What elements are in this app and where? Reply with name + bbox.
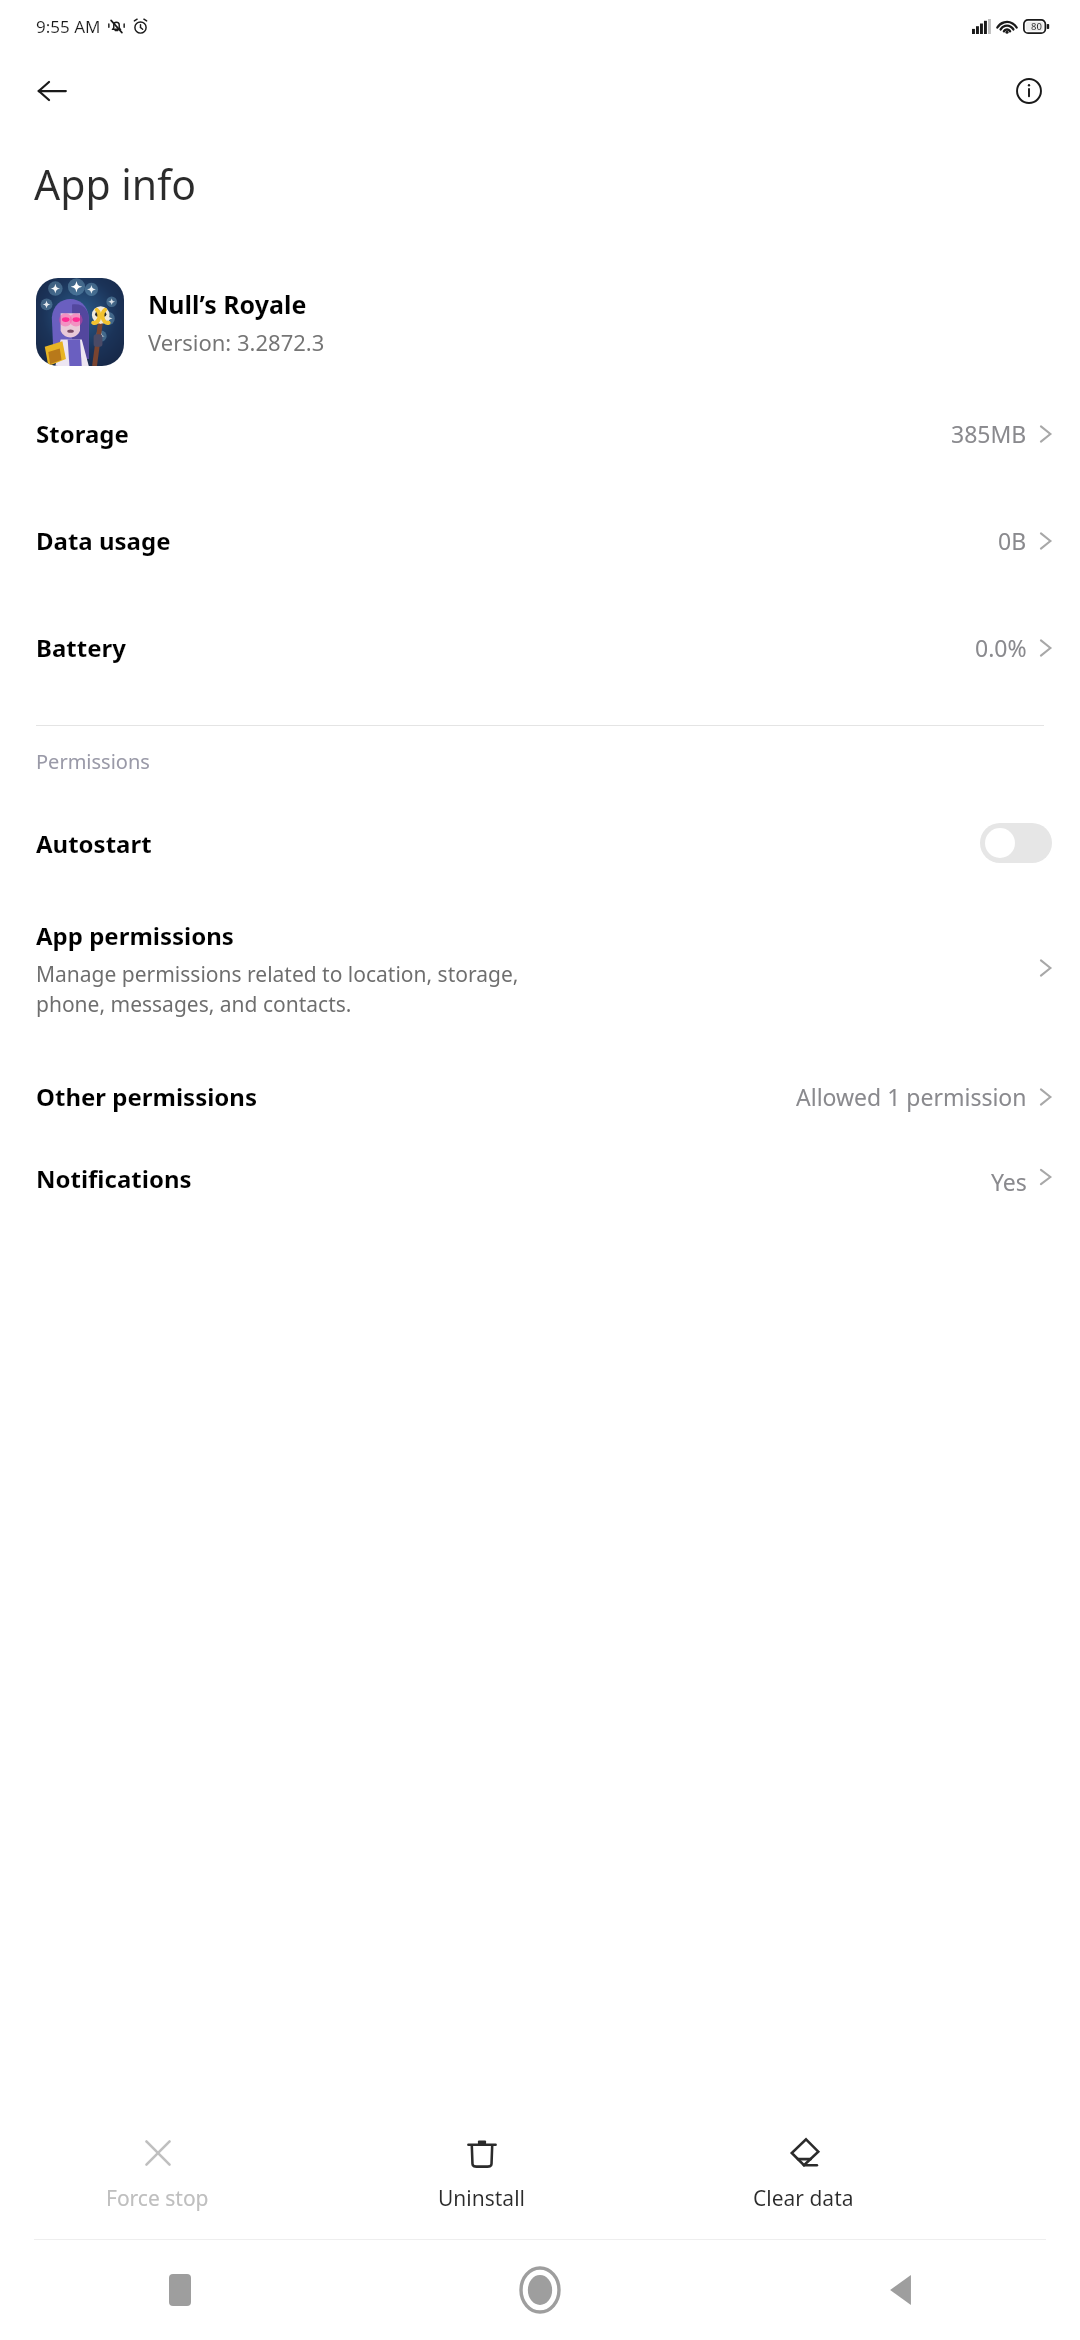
staticText: Autostart (36, 827, 152, 860)
button[interactable]: Battery (0, 594, 1080, 701)
staticText: App info (34, 156, 197, 212)
button[interactable]: Force stop (106, 2136, 209, 2213)
button[interactable]: Other permissions (0, 1043, 1080, 1150)
staticText: 80 (1031, 20, 1042, 33)
button[interactable]: Notifications (0, 1150, 1080, 1194)
staticText: Clear data (753, 2184, 854, 2213)
staticText: Storage (36, 417, 129, 450)
button[interactable]: Recents (0, 2240, 360, 2340)
button[interactable]: Data usage (0, 487, 1080, 594)
button[interactable]: Home (360, 2240, 720, 2340)
staticText: Version: 3.2872.3 (148, 327, 325, 357)
staticText: Null’s Royale (148, 287, 307, 321)
staticText: Data usage (36, 524, 171, 557)
staticText: Other permissions (36, 1080, 258, 1113)
staticText: Allowed 1 permission (796, 1081, 1027, 1112)
staticText: Manage permissions related to location, … (36, 960, 519, 1018)
button[interactable]: App info details (1000, 62, 1058, 120)
staticText: 9:55 AM (36, 15, 101, 38)
staticText: Permissions (36, 748, 150, 775)
button[interactable]: Autostart (0, 793, 1080, 893)
button[interactable]: Back (720, 2240, 1080, 2340)
staticText: 0B (998, 525, 1027, 556)
button[interactable]: Storage (0, 380, 1080, 487)
staticText: 385MB (951, 418, 1027, 449)
staticText: Force stop (106, 2184, 209, 2213)
button[interactable]: Clear data (753, 2136, 854, 2213)
staticText: Uninstall (438, 2184, 525, 2213)
staticText: Yes (991, 1166, 1027, 1194)
button[interactable]: Back (22, 61, 82, 121)
staticText: App permissions (36, 919, 234, 952)
staticText: Notifications (36, 1162, 192, 1194)
button[interactable]: Uninstall (438, 2136, 525, 2213)
staticText: 0.0% (975, 632, 1027, 663)
button[interactable]: App permissions (0, 893, 1080, 1043)
staticText: Battery (36, 631, 126, 664)
